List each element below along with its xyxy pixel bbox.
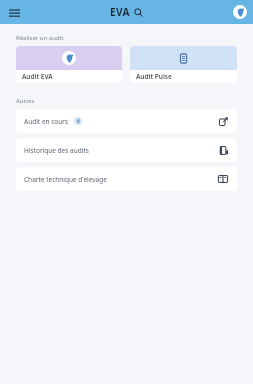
button[interactable]: Audit Pulse: [130, 46, 237, 83]
staticText: Audit en cours: [24, 117, 69, 126]
staticText: Charte technique d'élevage: [24, 175, 107, 184]
button[interactable]: Audit en cours: [16, 109, 237, 133]
staticText: 6: [77, 118, 80, 125]
staticText: Autres: [16, 97, 35, 105]
staticText: EVA: [110, 5, 130, 19]
staticText: Historique des audits: [24, 146, 89, 155]
button[interactable]: Rechercher: [132, 6, 144, 18]
button[interactable]: Audit EVA: [16, 46, 122, 83]
staticText: Audit EVA: [22, 72, 53, 81]
staticText: Audit Pulse: [136, 72, 172, 81]
button[interactable]: Historique des audits: [16, 138, 237, 162]
button[interactable]: Menu: [4, 2, 24, 22]
button[interactable]: Profil: [233, 5, 247, 19]
staticText: Réaliser un audit: [16, 34, 64, 42]
button[interactable]: Charte technique d'élevage: [16, 167, 237, 191]
